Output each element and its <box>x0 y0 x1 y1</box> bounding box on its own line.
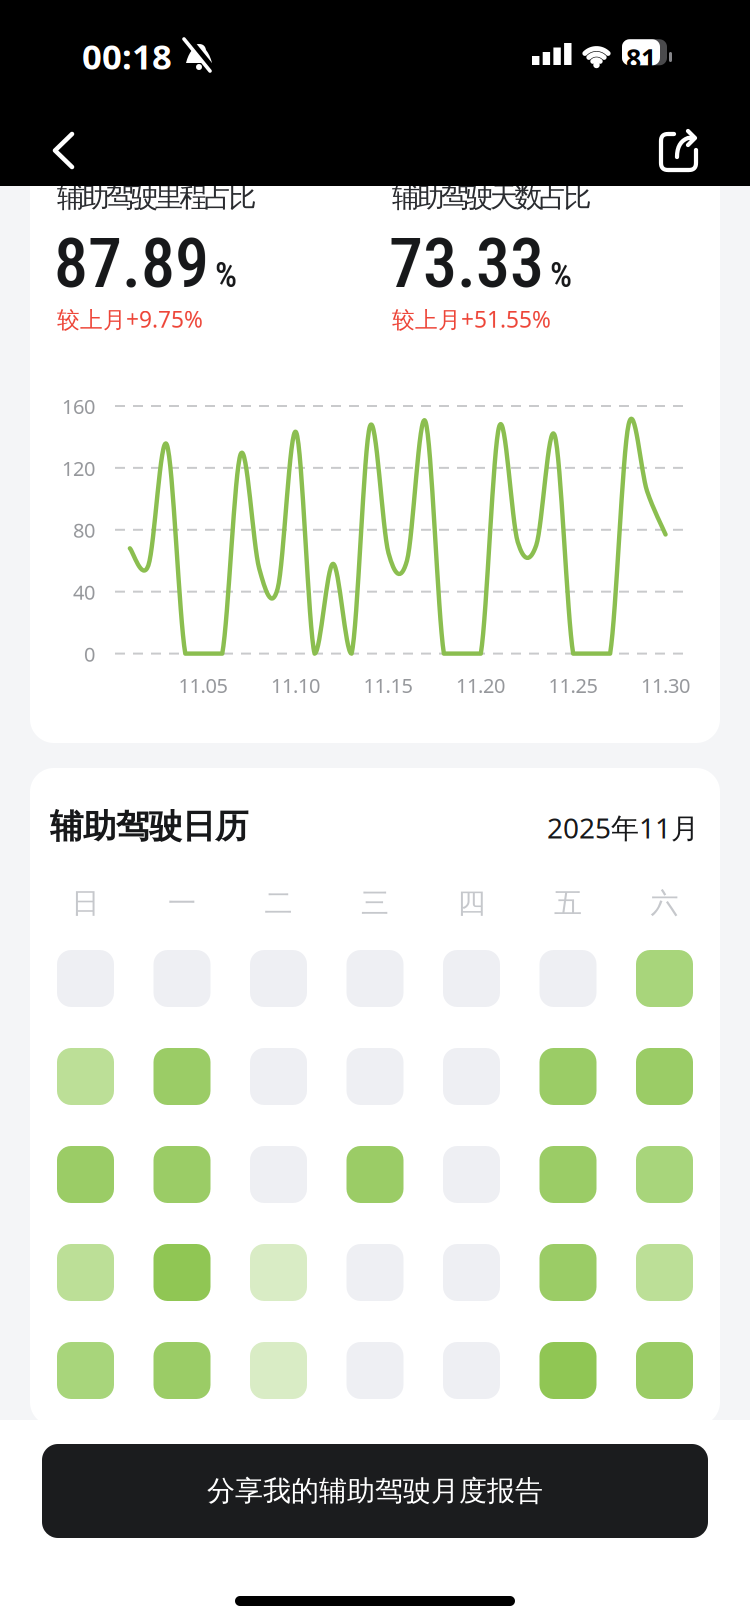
staticText: 六 <box>650 886 678 920</box>
staticText: 较上月+9.75% <box>57 304 203 334</box>
staticText: 11.15 <box>363 672 412 699</box>
staticText: 00:18 <box>82 33 172 79</box>
staticText: % <box>550 255 572 295</box>
staticText: 分享我的辅助驾驶月度报告 <box>207 1474 543 1508</box>
staticText: 辅助驾驶日历 <box>50 806 248 847</box>
staticText: 80 <box>73 517 95 543</box>
staticText: 四 <box>457 886 485 920</box>
staticText: 三 <box>361 886 389 920</box>
button[interactable]: 分享我的辅助驾驶月度报告 <box>42 1444 708 1538</box>
staticText: 11.20 <box>456 672 505 699</box>
staticText: 2025年11月 <box>547 809 699 846</box>
staticText: 87.89 <box>54 224 209 304</box>
staticText: 辅助驾驶天数占比 <box>392 180 591 214</box>
staticText: 81 <box>626 40 656 76</box>
staticText: 160 <box>62 393 95 420</box>
button[interactable]: Back <box>36 124 92 177</box>
staticText: % <box>215 255 237 295</box>
staticText: 一 <box>168 886 196 920</box>
staticText: 0 <box>84 641 95 667</box>
staticText: 40 <box>73 579 95 605</box>
staticText: 辅助驾驶里程占比 <box>57 180 256 214</box>
staticText: 73.33 <box>389 224 544 304</box>
staticText: 五 <box>554 886 582 920</box>
staticText: 11.30 <box>641 672 690 699</box>
staticText: 日 <box>71 886 99 920</box>
staticText: 120 <box>62 455 95 481</box>
staticText: 11.05 <box>178 672 227 699</box>
staticText: 11.25 <box>548 672 597 699</box>
staticText: 二 <box>264 886 292 920</box>
staticText: 较上月+51.55% <box>392 304 551 334</box>
button[interactable]: Share <box>646 122 710 180</box>
staticText: 11.10 <box>271 672 320 699</box>
